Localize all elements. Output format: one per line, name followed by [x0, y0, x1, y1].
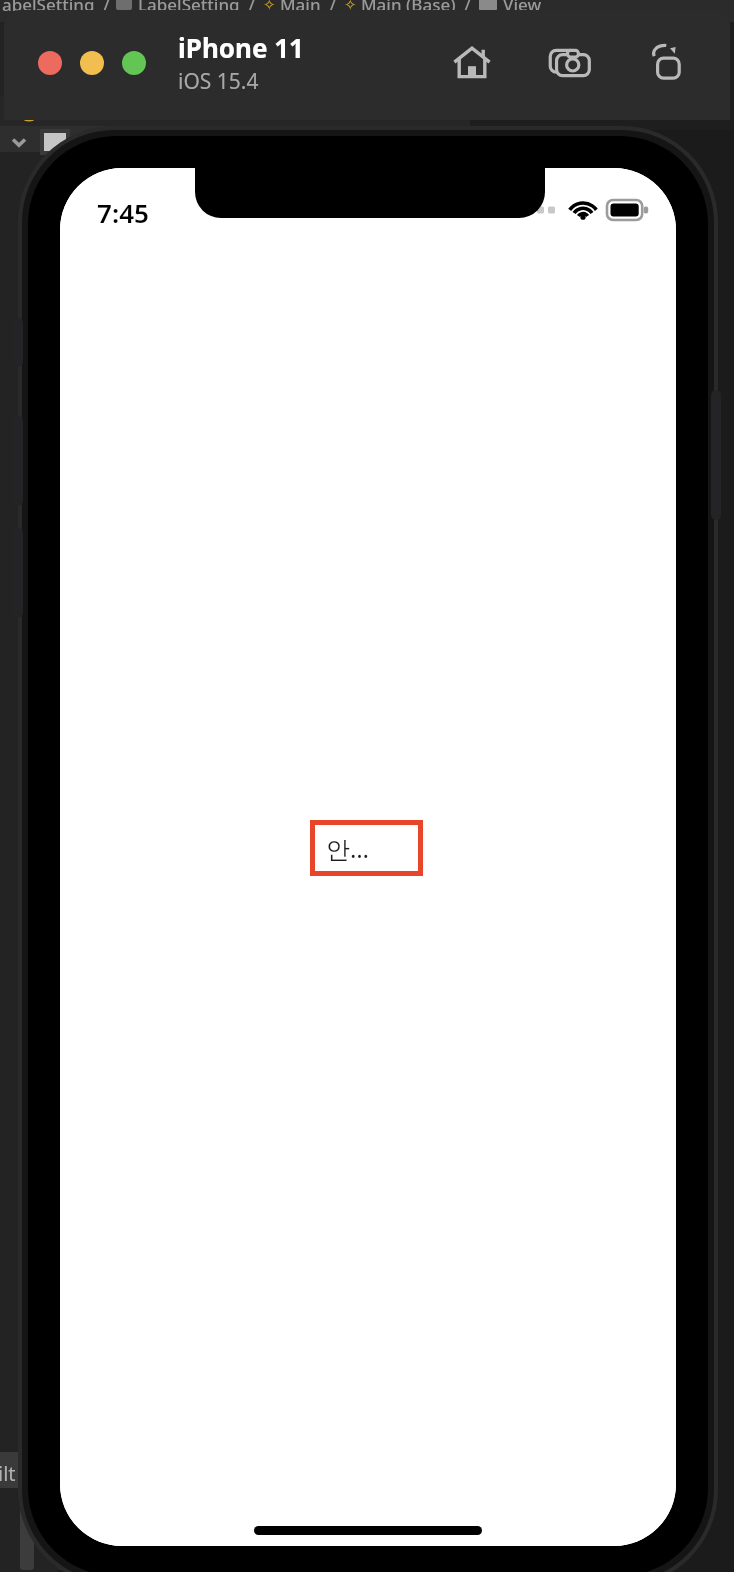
button[interactable]: Screenshot: [544, 37, 596, 89]
staticText: Main /: [280, 0, 336, 15]
staticText: ilt: [0, 1460, 16, 1487]
button[interactable]: Minimise: [80, 51, 104, 75]
staticText: LabelSetting /: [138, 0, 255, 15]
button[interactable]: Home: [446, 37, 498, 89]
button[interactable]: Close: [38, 51, 62, 75]
staticText: abelSetting /: [2, 0, 110, 15]
staticText: iPhone 11: [178, 30, 304, 65]
button[interactable]: Rotate: [642, 37, 694, 89]
staticText: ✧: [344, 0, 357, 13]
button[interactable]: Zoom: [122, 51, 146, 75]
staticText: 7:45: [97, 195, 149, 230]
button[interactable]: 안…: [310, 820, 423, 876]
staticText: ✧: [263, 0, 276, 13]
staticText: iOS 15.4: [178, 67, 259, 96]
staticText: 안…: [326, 832, 369, 865]
staticText: Main (Base) /: [361, 0, 471, 15]
staticText: View: [503, 0, 542, 15]
